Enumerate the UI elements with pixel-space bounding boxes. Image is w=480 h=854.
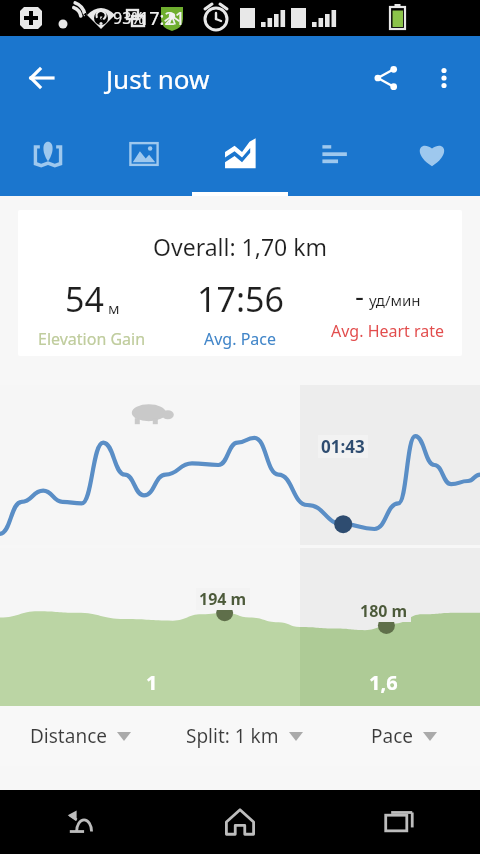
button[interactable]: Charts (192, 120, 288, 196)
staticText: Just now (106, 61, 210, 96)
button[interactable]: Recent apps (320, 790, 480, 854)
staticText: м (104, 298, 120, 318)
staticText: Elevation Gain (38, 328, 146, 350)
staticText: 01:43 (321, 435, 365, 458)
button[interactable]: Overall: 1,70 km (18, 210, 462, 356)
staticText: 2 (99, 9, 106, 24)
staticText: Avg. Pace (204, 328, 277, 350)
staticText: 1 (82, 9, 89, 24)
button[interactable]: Splits (288, 120, 384, 196)
staticText: 17:56 (197, 276, 284, 322)
button[interactable]: Distance (0, 706, 160, 766)
staticText: 180 m (360, 600, 408, 622)
staticText: Pace (371, 723, 413, 749)
staticText: 194 m (199, 588, 247, 610)
button[interactable]: Split: 1 km (160, 706, 328, 766)
button[interactable]: Heart rate (384, 120, 480, 196)
button[interactable]: More options (420, 54, 468, 102)
staticText: Distance (30, 723, 107, 749)
button[interactable]: Photos (96, 120, 192, 196)
staticText: 1,6 (369, 669, 398, 696)
staticText: 1 (146, 669, 158, 696)
staticText: Split: 1 km (186, 723, 279, 749)
staticText: 93% (113, 7, 145, 29)
button[interactable]: Back (0, 790, 160, 854)
staticText: - (355, 276, 365, 314)
button[interactable]: Share (360, 52, 412, 104)
staticText: Avg. Heart rate (331, 320, 445, 342)
button[interactable]: Back (14, 50, 70, 106)
staticText: 17:21 (139, 6, 186, 31)
button[interactable]: Pace (328, 706, 480, 766)
staticText: 54 (65, 276, 104, 322)
button[interactable]: Map (0, 120, 96, 196)
staticText: Overall: 1,70 km (18, 231, 462, 262)
staticText: уд/мин (365, 290, 421, 310)
button[interactable]: Home (160, 790, 320, 854)
